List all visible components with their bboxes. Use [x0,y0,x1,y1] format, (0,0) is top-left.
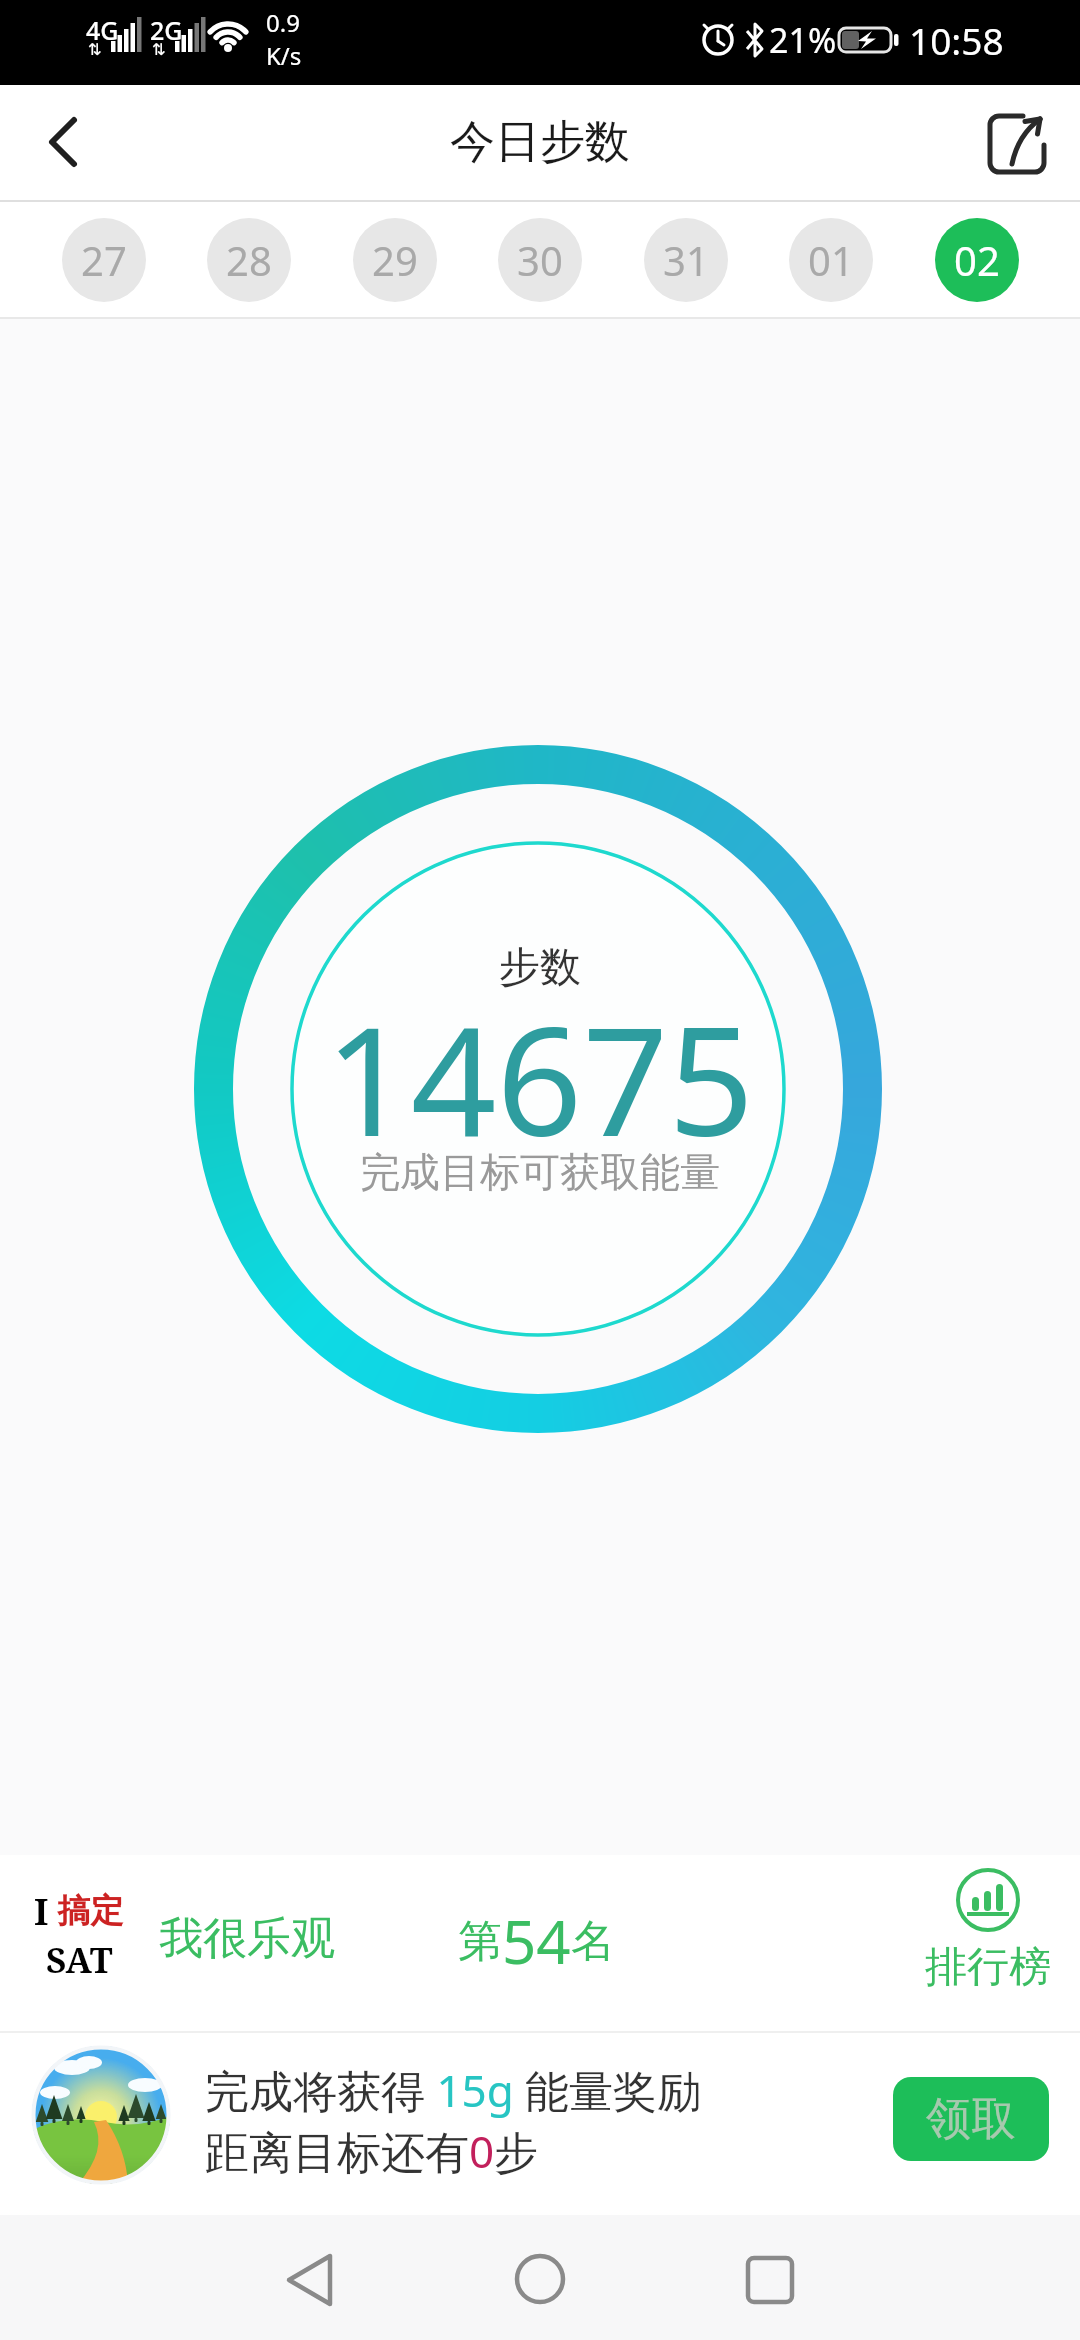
button[interactable] [500,2240,580,2320]
button[interactable]: 第 [458,1900,615,1982]
button[interactable]: 29 [353,218,437,302]
staticText: 01 [808,233,854,287]
staticText: 第 [458,1914,502,1969]
staticText: 今日步数 [450,114,630,171]
staticText: 名 [571,1914,615,1969]
staticText: 距离目标还有0步 [205,2121,539,2181]
staticText: 0.9 [266,6,300,39]
staticText: 完成目标可获取能量 [360,1147,720,1197]
staticText: 28 [226,233,272,287]
staticText: 我很乐观 [159,1911,335,1966]
staticText: 30 [517,233,563,287]
staticText: 21% [769,17,837,63]
staticText: 4G [86,13,119,47]
button[interactable]: 27 [62,218,146,302]
button[interactable]: 30 [498,218,582,302]
staticText: ⇅ [152,40,166,59]
staticText: K/s [266,39,302,72]
staticText: 27 [81,233,127,287]
button[interactable]: 28 [207,218,291,302]
staticText: 步数 [499,942,581,994]
staticText: 领取 [926,2091,1016,2148]
button[interactable] [270,2240,350,2320]
button[interactable]: 排行榜 [924,1867,1052,1994]
staticText: 完成将获得 15g 能量奖励 [205,2060,702,2120]
button[interactable]: 31 [644,218,728,302]
staticText: 02 [954,233,1000,287]
staticText: 31 [663,233,709,287]
staticText: 54 [502,1900,571,1982]
button[interactable] [38,116,90,168]
button[interactable]: 01 [789,218,873,302]
staticText: ⇅ [88,40,102,59]
button[interactable] [730,2240,810,2320]
staticText: 搞定 [49,1887,124,1932]
staticText: 排行榜 [925,1941,1051,1994]
button[interactable]: 领取 [893,2077,1049,2161]
button[interactable] [985,109,1051,175]
staticText: 14675 [325,976,755,1180]
staticText: 10:58 [909,15,1004,65]
staticText: SAT [46,1936,113,1984]
button[interactable]: 02 [935,218,1019,302]
staticText: I [34,1887,49,1936]
staticText: 29 [372,233,418,287]
staticText: 2G [150,13,183,47]
